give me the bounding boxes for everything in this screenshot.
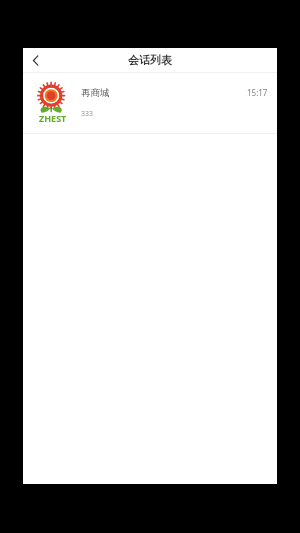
- staticText: ZHEST: [39, 112, 67, 124]
- staticText: 会话列表: [128, 53, 172, 67]
- staticText: 333: [81, 109, 94, 119]
- staticText: 再商城: [81, 87, 110, 99]
- button[interactable]: Back: [23, 48, 47, 72]
- staticText: 15:17: [247, 87, 268, 98]
- button[interactable]: ZHEST: [23, 73, 277, 133]
